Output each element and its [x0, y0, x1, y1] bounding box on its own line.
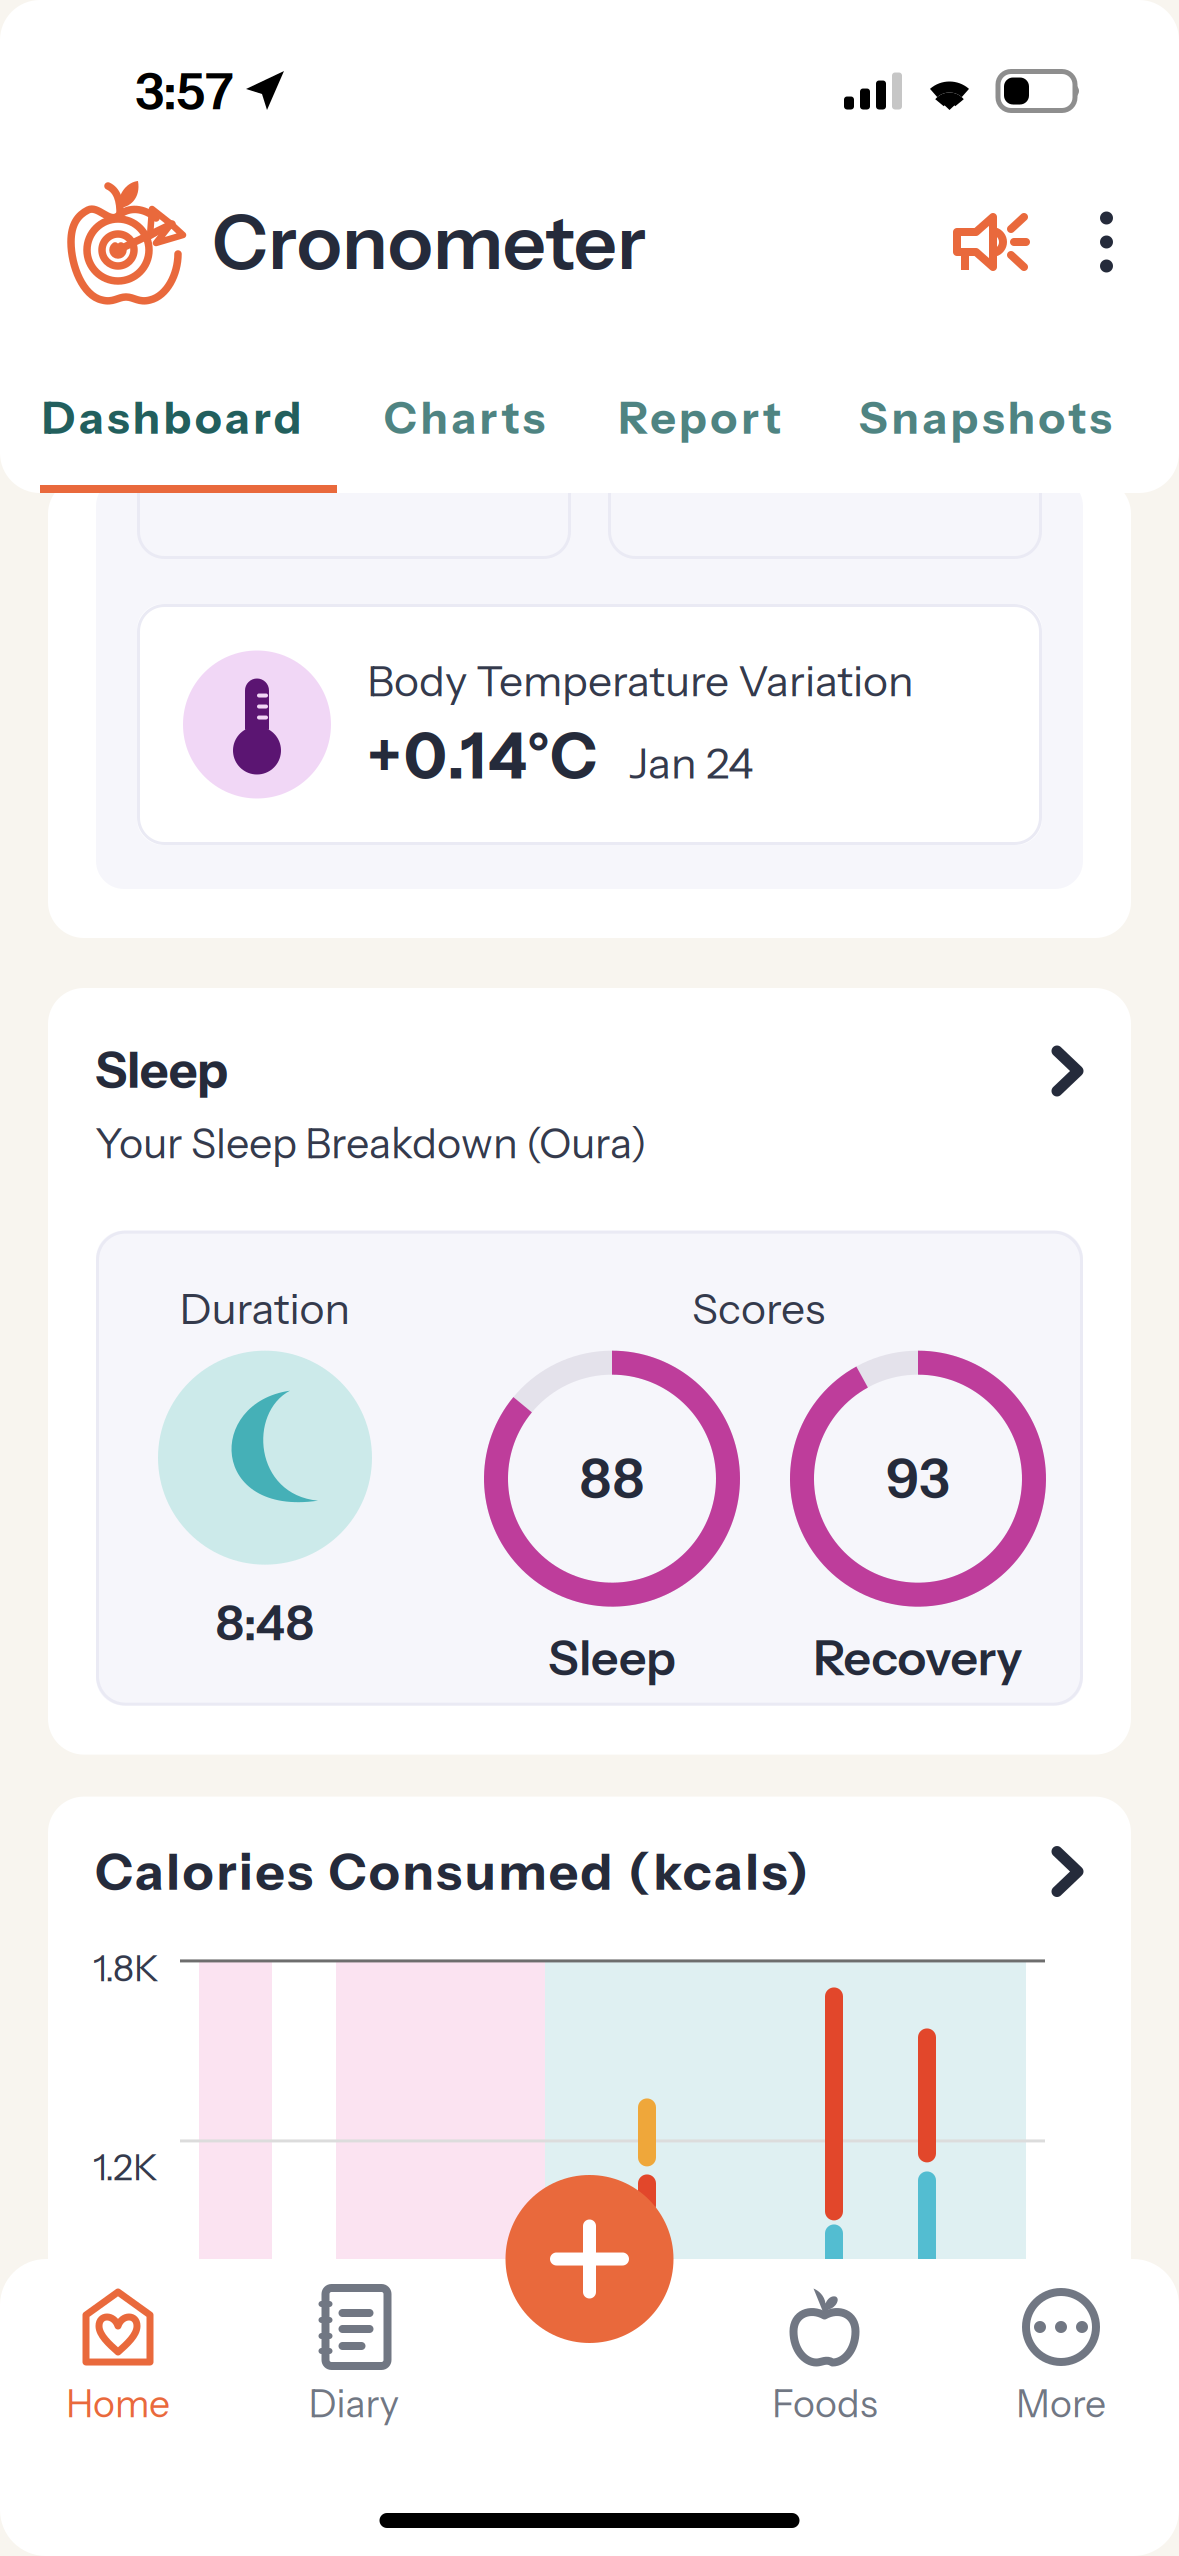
- staticText: Charts: [384, 391, 545, 445]
- button[interactable]: Dashboard: [21, 318, 323, 471]
- staticText: Diary: [308, 2381, 399, 2426]
- staticText: 1.2K: [93, 2145, 158, 2189]
- staticText: Report: [619, 391, 782, 445]
- staticText: Scores: [692, 1283, 825, 1335]
- staticText: Dashboard: [42, 391, 302, 445]
- staticText: 8:48: [215, 1594, 314, 1652]
- staticText: 88: [579, 1446, 644, 1511]
- button[interactable]: Home: [0, 2259, 236, 2459]
- button[interactable]: More options: [1072, 191, 1141, 292]
- staticText: Sleep: [548, 1629, 676, 1687]
- staticText: 1.8K: [93, 1946, 159, 1990]
- button[interactable]: Snapshots: [838, 318, 1133, 471]
- button[interactable]: Sleep: [48, 988, 1131, 1169]
- button[interactable]: Announcements: [932, 192, 1050, 292]
- staticText: Calories Consumed (kcals): [95, 1841, 808, 1902]
- button[interactable]: Add: [505, 2175, 673, 2343]
- staticText: Home: [66, 2381, 170, 2426]
- staticText: 93: [886, 1446, 950, 1511]
- staticText: Foods: [772, 2381, 878, 2426]
- staticText: Your Sleep Breakdown (Oura): [95, 1118, 647, 1169]
- staticText: Body Temperature Variation: [367, 655, 914, 707]
- button[interactable]: Report: [598, 318, 803, 471]
- staticText: Sleep: [95, 1040, 228, 1100]
- staticText: Recovery: [813, 1629, 1022, 1687]
- staticText: Snapshots: [859, 391, 1112, 445]
- button[interactable]: Calories Consumed (kcals): [48, 1797, 1131, 1902]
- button[interactable]: Diary: [236, 2259, 472, 2459]
- staticText: Duration: [179, 1283, 350, 1335]
- staticText: Cronometer: [212, 196, 646, 288]
- button[interactable]: Charts: [363, 318, 566, 471]
- staticText: Jan 24: [629, 737, 754, 789]
- staticText: More: [1016, 2381, 1106, 2426]
- staticText: 3:57: [135, 60, 233, 122]
- button[interactable]: More: [943, 2259, 1179, 2459]
- staticText: +0.14°C: [367, 718, 597, 794]
- button[interactable]: Foods: [707, 2259, 943, 2459]
